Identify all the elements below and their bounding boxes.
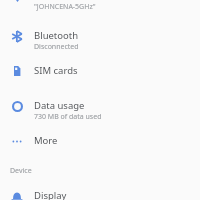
staticText: Disconnected bbox=[34, 42, 79, 52]
staticText: Data usage bbox=[34, 99, 85, 112]
other: Bluetooth settings bbox=[0, 29, 34, 43]
other: Display settings bbox=[0, 189, 34, 200]
staticText: Device bbox=[10, 166, 32, 176]
other: More settings bbox=[0, 134, 34, 148]
button[interactable]: Bluetooth settings bbox=[0, 29, 200, 52]
staticText: Bluetooth bbox=[34, 29, 79, 42]
other: SIM cards settings bbox=[0, 64, 34, 78]
button[interactable]: More settings bbox=[0, 134, 200, 148]
staticText: Display bbox=[34, 189, 67, 200]
staticText: More bbox=[34, 134, 58, 147]
staticText: SIM cards bbox=[34, 64, 78, 77]
button[interactable]: Data usage settings bbox=[0, 99, 200, 122]
button[interactable]: SIM cards settings bbox=[0, 64, 200, 78]
button[interactable]: Display settings bbox=[0, 189, 200, 200]
button[interactable]: Wi-Fi settings bbox=[0, 0, 200, 12]
staticText: "JOHNCENA-5GHz" bbox=[34, 2, 96, 12]
other: Data usage settings bbox=[0, 99, 34, 113]
other: Wi-Fi settings bbox=[0, 0, 34, 3]
staticText: 730 MB of data used bbox=[34, 112, 102, 122]
